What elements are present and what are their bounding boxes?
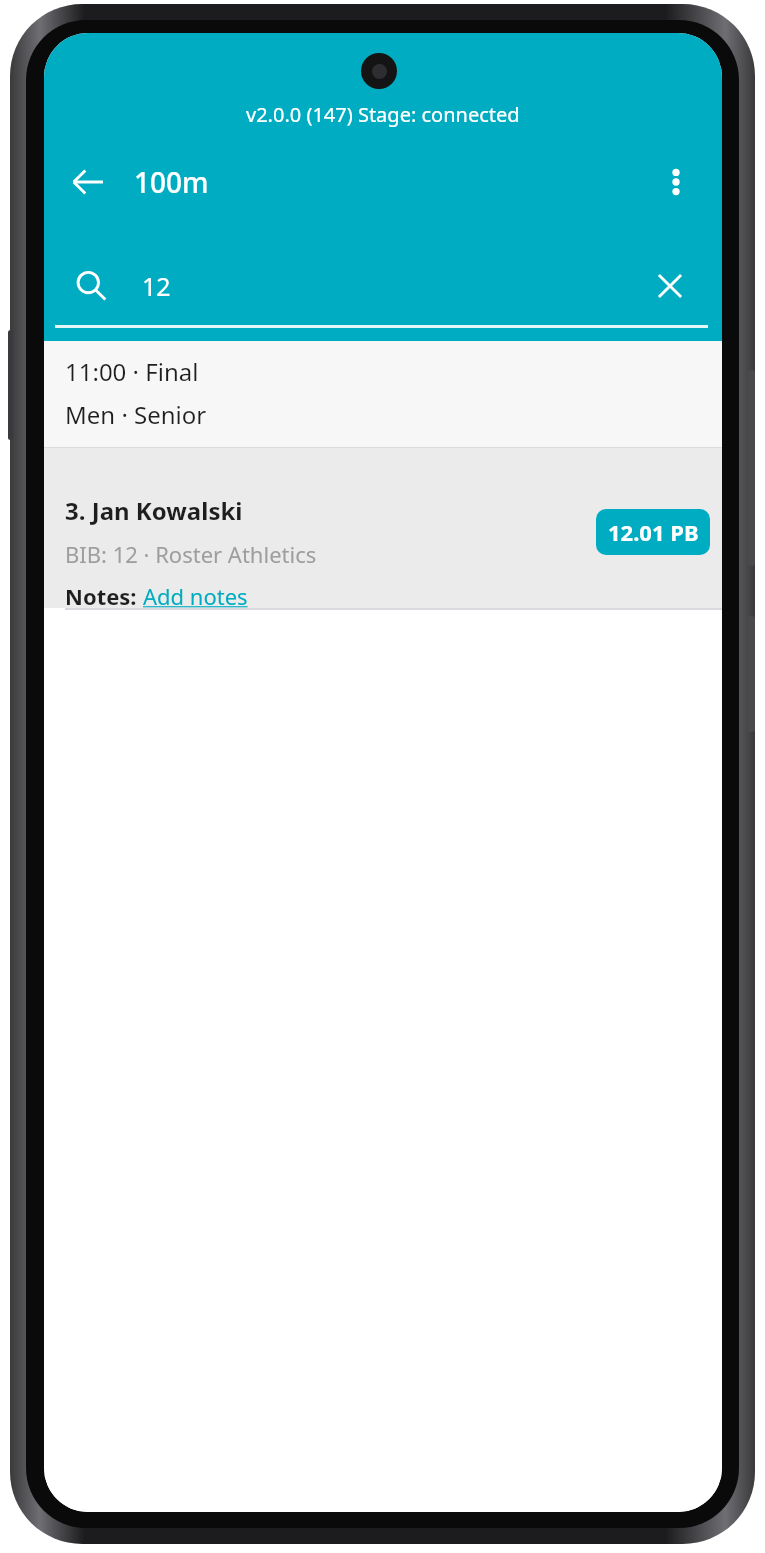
staticText: 11:00 · Final [65,355,199,388]
button[interactable]: Back [64,158,112,206]
staticText: v2.0.0 (147) Stage: connected [246,101,520,128]
button[interactable]: 12.01 PB [596,509,710,555]
staticText: BIB: 12 · Roster Athletics [65,539,317,569]
button[interactable]: More options [650,156,702,208]
staticText: 12 [142,269,171,303]
button[interactable]: Search [66,261,116,311]
staticText: 100m [134,163,209,201]
button[interactable]: 3. Jan Kowalski [44,448,722,608]
staticText: 12.01 PB [608,517,699,547]
staticText: Notes: [65,581,143,611]
button[interactable]: Add notes [143,581,248,611]
button[interactable]: 11:00 · Final [44,341,722,447]
staticText: 3. Jan Kowalski [65,494,243,527]
staticText: Add notes [143,581,248,611]
staticText: Men · Senior [65,398,207,431]
button[interactable]: Clear search [644,260,696,312]
